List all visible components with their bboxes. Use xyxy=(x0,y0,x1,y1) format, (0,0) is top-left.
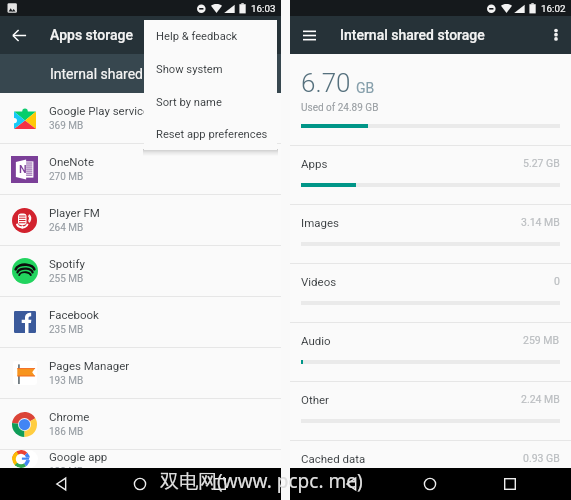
staticText: 5.27 GB xyxy=(523,157,560,169)
button[interactable]: Recent apps xyxy=(496,470,524,498)
staticText: Chrome xyxy=(49,410,90,423)
staticText: 16:02 xyxy=(541,3,566,14)
button[interactable]: Sort by name xyxy=(144,86,277,119)
staticText: 6.70 xyxy=(301,68,351,98)
staticText: Sort by name xyxy=(156,96,222,109)
staticText: Internal shared storage xyxy=(50,66,194,82)
staticText: Show system xyxy=(156,63,223,76)
button[interactable]: Home xyxy=(416,470,444,498)
staticText: Google app xyxy=(49,450,108,463)
staticText: 3.14 MB xyxy=(521,216,560,228)
staticText: Help & feedback xyxy=(156,30,238,43)
staticText: Spotify xyxy=(49,257,85,270)
staticText: 0 xyxy=(554,275,560,287)
staticText: Other xyxy=(301,393,330,406)
staticText: 180 MB xyxy=(49,466,84,468)
button[interactable]: Google app xyxy=(0,450,281,468)
staticText: 235 MB xyxy=(49,324,84,336)
staticText: Pages Manager xyxy=(49,359,130,372)
staticText: Google Play services xyxy=(49,104,156,117)
button[interactable]: Videos xyxy=(290,264,571,322)
staticText: 双电网(www. pcpc. me) xyxy=(160,468,363,494)
button[interactable]: Back xyxy=(338,470,366,498)
button[interactable]: Cached data xyxy=(290,441,571,468)
button[interactable]: N xyxy=(0,144,281,194)
button[interactable]: Back xyxy=(0,16,38,54)
staticText: 16:03 xyxy=(251,3,276,14)
staticText: 2.24 MB xyxy=(521,393,560,405)
button[interactable]: Open navigation menu xyxy=(290,16,328,54)
button[interactable]: Spotify xyxy=(0,246,281,296)
staticText: OneNote xyxy=(49,155,94,168)
staticText: Facebook xyxy=(49,308,99,321)
staticText: Internal shared storage xyxy=(340,27,485,43)
staticText: Apps storage xyxy=(50,27,133,43)
button[interactable]: Pages Manager xyxy=(0,348,281,398)
staticText: Cached data xyxy=(301,452,366,465)
staticText: GB xyxy=(356,80,375,96)
staticText: Videos xyxy=(301,275,337,288)
staticText: Reset app preferences xyxy=(156,128,268,141)
staticText: 255 MB xyxy=(49,273,84,285)
staticText: 264 MB xyxy=(49,222,84,234)
button[interactable]: Audio xyxy=(290,323,571,381)
staticText: Used of 24.89 GB xyxy=(301,102,379,114)
staticText: 0.93 GB xyxy=(523,452,560,464)
button[interactable]: Show system xyxy=(144,53,277,86)
staticText: 259 MB xyxy=(523,334,560,346)
button[interactable]: Home xyxy=(126,470,154,498)
button[interactable]: Apps xyxy=(290,146,571,204)
button[interactable]: Google Play services xyxy=(0,93,281,143)
button[interactable]: More options xyxy=(541,20,571,50)
staticText: Audio xyxy=(301,334,331,347)
button[interactable]: Facebook xyxy=(0,297,281,347)
button[interactable]: Chrome xyxy=(0,399,281,449)
staticText: N xyxy=(19,163,27,176)
staticText: Images xyxy=(301,216,339,229)
button[interactable]: Other xyxy=(290,382,571,440)
staticText: 193 MB xyxy=(49,375,84,387)
staticText: Player FM xyxy=(49,206,100,219)
button[interactable]: Help & feedback xyxy=(144,20,277,53)
staticText: 270 MB xyxy=(49,171,84,183)
staticText: 369 MB xyxy=(49,120,84,132)
button[interactable]: Player FM xyxy=(0,195,281,245)
button[interactable]: Images xyxy=(290,205,571,263)
staticText: Apps xyxy=(301,157,328,170)
button[interactable]: Back xyxy=(48,470,76,498)
staticText: 186 MB xyxy=(49,426,84,438)
button[interactable]: Reset app preferences xyxy=(144,119,277,150)
button[interactable]: Recent apps xyxy=(206,470,234,498)
